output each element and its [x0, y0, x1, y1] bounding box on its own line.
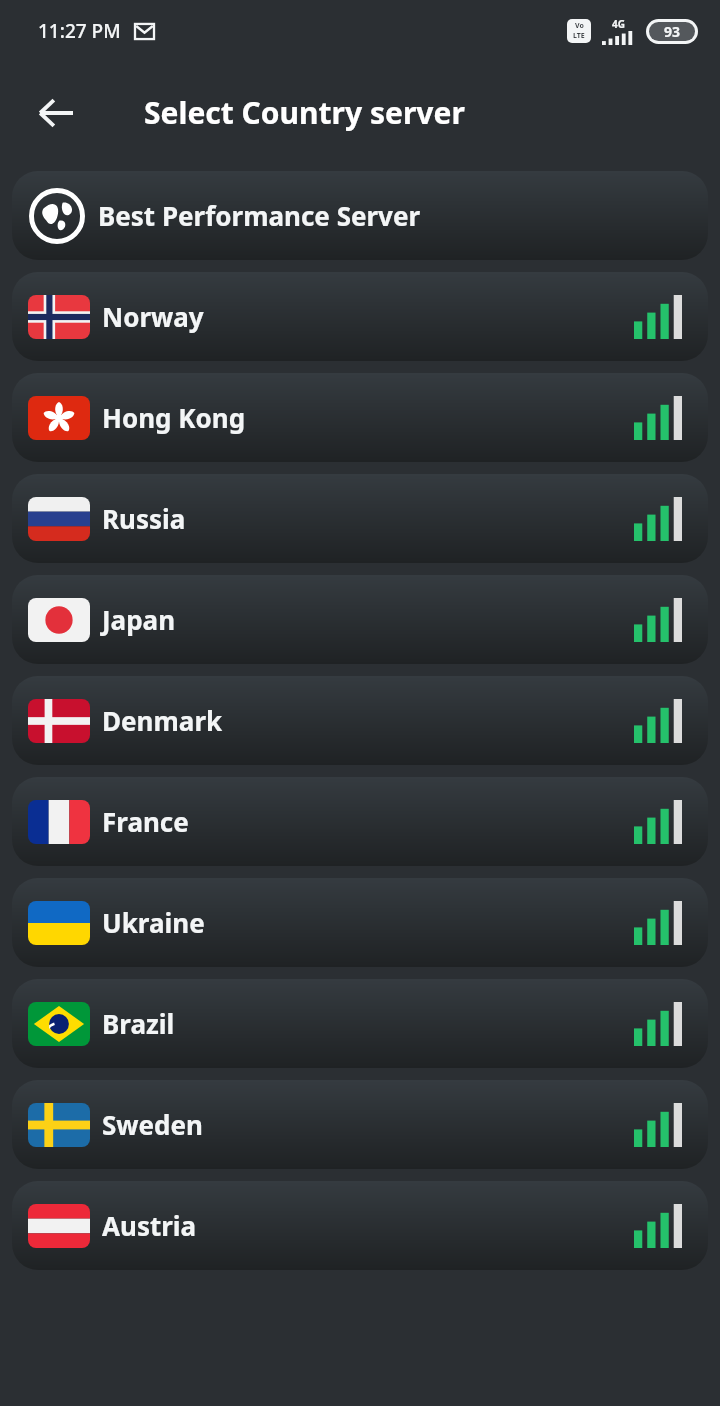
button[interactable]: Ukraine	[12, 878, 708, 967]
staticText: Hong Kong	[102, 400, 246, 435]
staticText: Vo	[575, 21, 584, 31]
button[interactable]: Russia	[12, 474, 708, 563]
staticText: Brazil	[102, 1006, 175, 1041]
staticText: Japan	[102, 602, 176, 637]
button[interactable]: Sweden	[12, 1080, 708, 1169]
button[interactable]: Japan	[12, 575, 708, 664]
staticText: Ukraine	[102, 905, 205, 940]
staticText: Norway	[102, 299, 204, 334]
staticText: Russia	[102, 501, 186, 536]
staticText: Austria	[102, 1208, 197, 1243]
button[interactable]: Brazil	[12, 979, 708, 1068]
staticText: Select Country server	[144, 92, 465, 133]
staticText: Denmark	[102, 703, 223, 738]
staticText: LTE	[573, 31, 585, 41]
button[interactable]: Back	[20, 77, 92, 149]
button[interactable]: Austria	[12, 1181, 708, 1270]
button[interactable]: Denmark	[12, 676, 708, 765]
button[interactable]: Hong Kong	[12, 373, 708, 462]
staticText: Best Performance Server	[98, 198, 421, 233]
button[interactable]: France	[12, 777, 708, 866]
button[interactable]: Norway	[12, 272, 708, 361]
staticText: France	[102, 804, 189, 839]
staticText: 11:27 PM	[38, 18, 121, 44]
staticText: 93	[664, 22, 681, 41]
staticText: Sweden	[102, 1107, 203, 1142]
button[interactable]: Best Performance Server	[12, 171, 708, 260]
staticText: 4G	[612, 17, 625, 31]
